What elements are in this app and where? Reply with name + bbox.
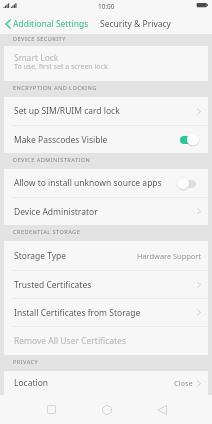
button[interactable]: Back [134,395,189,424]
button[interactable]: Set up SIM/RUIM card lock [4,97,208,125]
staticText: Trusted Certificates [14,279,92,291]
button[interactable]: Additional Settings [0,18,95,30]
staticText: Allow to install unknown source apps [14,177,162,189]
button[interactable]: Recents [24,395,79,424]
staticText: Remove All User Certificates [14,335,126,347]
staticText: ENCRYPTION AND LOCKING [13,84,97,92]
staticText: DEVICE SECURITY [13,35,66,43]
button[interactable]: Make Passcodes Visible [4,126,208,153]
staticText: Close [174,378,193,388]
staticText: Smart Lock [14,52,59,64]
staticText: Device Administrator [14,206,98,218]
button[interactable]: Switch on [177,133,199,146]
button[interactable]: Install Certificates from Storage [4,299,208,326]
staticText: CREDENTIAL STORAGE [13,228,81,236]
staticText: To use, first set a screen lock [14,62,108,72]
button[interactable]: Switch off [177,177,199,190]
button[interactable]: Home [79,395,134,424]
button[interactable]: Storage Type [4,241,208,270]
staticText: Additional Settings [13,18,89,30]
button[interactable]: Device Administrator [4,198,208,225]
staticText: Location [14,377,49,389]
staticText: Hardware Support [137,251,201,261]
staticText: PRIVACY [13,358,39,366]
button[interactable]: Allow to install unknown source apps [4,169,208,197]
staticText: Storage Type [14,250,67,262]
staticText: DEVICE ADMINISTRATION [13,156,91,164]
staticText: 10:00 [98,2,115,11]
button[interactable]: Location [4,371,208,395]
button[interactable]: Smart Lock [4,46,208,81]
button[interactable]: Trusted Certificates [4,271,208,298]
staticText: Set up SIM/RUIM card lock [14,105,120,117]
staticText: Security & Privacy [100,18,171,30]
staticText: Make Passcodes Visible [14,134,108,146]
staticText: Install Certificates from Storage [14,307,141,319]
button[interactable]: Remove All User Certificates [4,327,208,355]
